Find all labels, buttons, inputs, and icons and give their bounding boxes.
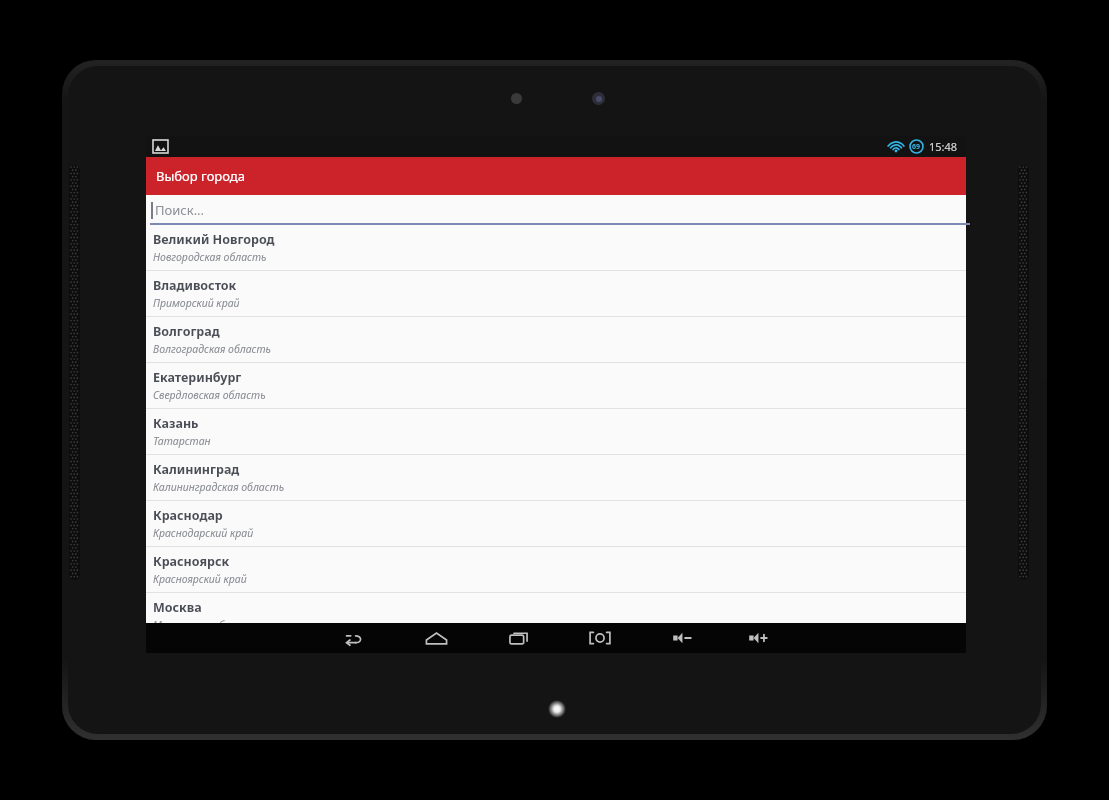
button[interactable]: Home xyxy=(419,624,453,652)
staticText: Татарстан xyxy=(153,434,211,448)
staticText: 15:48 xyxy=(929,139,958,154)
staticText: Волгоград xyxy=(153,323,220,340)
staticText: Новгородская область xyxy=(153,250,267,264)
button[interactable]: Владивосток xyxy=(146,271,966,317)
staticText: Краснодар xyxy=(153,507,223,524)
staticText: Великий Новгород xyxy=(153,231,275,248)
staticText: Владивосток xyxy=(153,277,237,294)
staticText: Выбор города xyxy=(156,167,245,185)
staticText: Волгоградская область xyxy=(153,342,271,356)
staticText: Свердловская область xyxy=(153,388,266,402)
staticText: Приморский край xyxy=(153,296,240,310)
button[interactable]: Краснодар xyxy=(146,501,966,547)
staticText: Москва xyxy=(153,599,202,616)
staticText: Калининград xyxy=(153,461,240,478)
button[interactable]: Back xyxy=(337,624,371,652)
button[interactable]: Поиск... xyxy=(146,195,966,225)
staticText: Екатеринбург xyxy=(153,369,242,386)
button[interactable]: Красноярск xyxy=(146,547,966,593)
button[interactable]: Казань xyxy=(146,409,966,455)
button[interactable]: Volume down xyxy=(665,624,699,652)
button[interactable]: Volume up xyxy=(741,624,775,652)
button[interactable]: Великий Новгород xyxy=(146,225,966,271)
button[interactable]: Калининград xyxy=(146,455,966,501)
staticText: 69 xyxy=(912,142,921,152)
staticText: Калининградская область xyxy=(153,480,285,494)
staticText: Красноярский край xyxy=(153,572,247,586)
staticText: Красноярск xyxy=(153,553,230,570)
button[interactable]: Волгоград xyxy=(146,317,966,363)
staticText: Поиск... xyxy=(155,201,205,219)
button[interactable]: Москва xyxy=(146,593,966,639)
button[interactable]: Recent apps xyxy=(501,624,535,652)
staticText: Казань xyxy=(153,415,199,432)
button[interactable]: Екатеринбург xyxy=(146,363,966,409)
button[interactable]: Выбор города xyxy=(146,157,966,195)
staticText: Московская область xyxy=(153,618,256,632)
staticText: Краснодарский край xyxy=(153,526,254,540)
button[interactable]: Screenshot xyxy=(583,624,617,652)
